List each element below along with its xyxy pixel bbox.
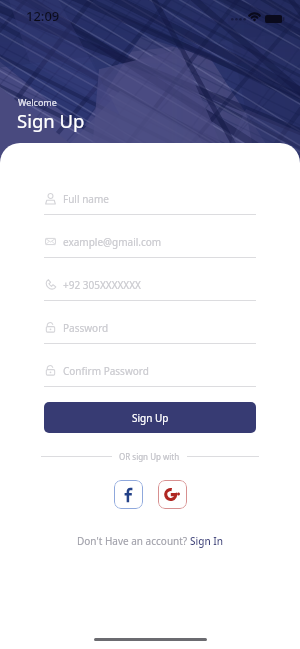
staticText: Sign In <box>190 534 224 548</box>
staticText: +92 305XXXXXXX <box>63 278 141 292</box>
button[interactable]: example@gmail.com <box>44 229 256 272</box>
staticText: Sign Up <box>17 108 85 133</box>
staticText: Confirm Password <box>63 364 149 378</box>
staticText: Welcome <box>18 96 57 108</box>
staticText: Sign Up <box>132 411 169 425</box>
staticText: example@gmail.com <box>63 235 162 249</box>
button[interactable]: Confirm Password <box>44 358 256 401</box>
staticText: Password <box>63 321 109 335</box>
staticText: 12:09 <box>26 7 60 25</box>
button[interactable]: Password <box>44 315 256 358</box>
button[interactable]: Sign In <box>190 534 224 548</box>
button[interactable]: Full name <box>44 186 256 229</box>
button[interactable]: Sign up with Facebook <box>114 480 143 509</box>
staticText: Full name <box>63 192 109 206</box>
button[interactable]: +92 305XXXXXXX <box>44 272 256 315</box>
button[interactable]: Sign up with Google <box>158 480 187 509</box>
button[interactable]: Sign Up <box>44 402 256 433</box>
staticText: Don't Have an account? <box>77 534 190 548</box>
staticText: OR sign Up with <box>119 451 180 462</box>
